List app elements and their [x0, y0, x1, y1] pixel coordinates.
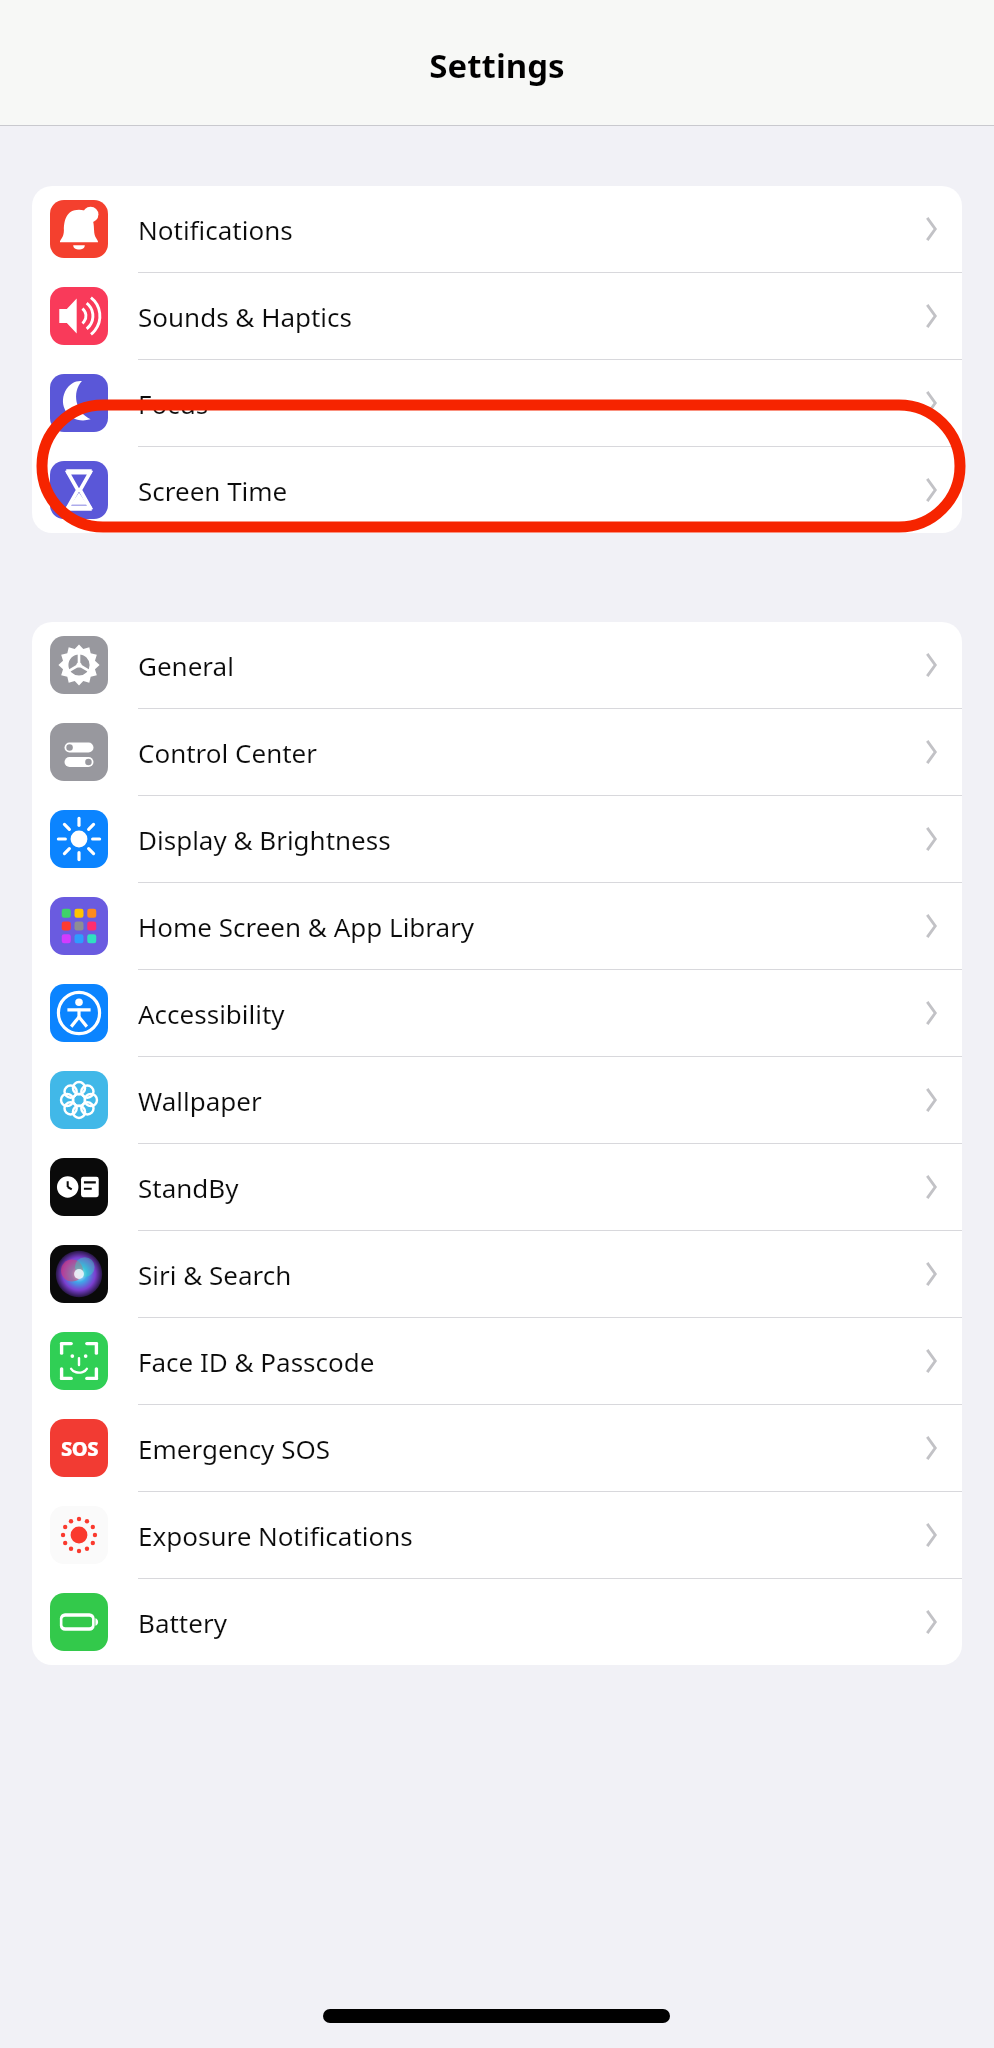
- button[interactable]: Home Screen & App Library: [32, 883, 962, 969]
- button[interactable]: Wallpaper: [32, 1057, 962, 1143]
- button[interactable]: Siri & Search: [32, 1231, 962, 1317]
- staticText: SOS: [61, 1435, 98, 1462]
- staticText: Exposure Notifications: [138, 1518, 923, 1553]
- button[interactable]: StandBy: [32, 1144, 962, 1230]
- staticText: Notifications: [138, 212, 923, 247]
- staticText: StandBy: [138, 1170, 923, 1205]
- button[interactable]: Screen Time: [32, 447, 962, 533]
- button[interactable]: Display & Brightness: [32, 796, 962, 882]
- button[interactable]: Face ID & Passcode: [32, 1318, 962, 1404]
- button[interactable]: General: [32, 622, 962, 708]
- staticText: Sounds & Haptics: [138, 299, 923, 334]
- button[interactable]: Notifications: [32, 186, 962, 272]
- button[interactable]: Accessibility: [32, 970, 962, 1056]
- staticText: Battery: [138, 1605, 923, 1640]
- button[interactable]: SOS: [32, 1405, 962, 1491]
- staticText: Settings: [429, 43, 565, 88]
- staticText: Siri & Search: [138, 1257, 923, 1292]
- staticText: Home Screen & App Library: [138, 909, 923, 944]
- staticText: Display & Brightness: [138, 822, 923, 857]
- staticText: Screen Time: [138, 473, 923, 508]
- staticText: Emergency SOS: [138, 1431, 923, 1466]
- button[interactable]: Control Center: [32, 709, 962, 795]
- button[interactable]: Exposure Notifications: [32, 1492, 962, 1578]
- button[interactable]: Focus: [32, 360, 962, 446]
- button[interactable]: Battery: [32, 1579, 962, 1665]
- staticText: Accessibility: [138, 996, 923, 1031]
- staticText: Face ID & Passcode: [138, 1344, 923, 1379]
- staticText: General: [138, 648, 923, 683]
- staticText: Wallpaper: [138, 1083, 923, 1118]
- button[interactable]: Sounds & Haptics: [32, 273, 962, 359]
- staticText: Focus: [138, 386, 923, 421]
- staticText: Control Center: [138, 735, 923, 770]
